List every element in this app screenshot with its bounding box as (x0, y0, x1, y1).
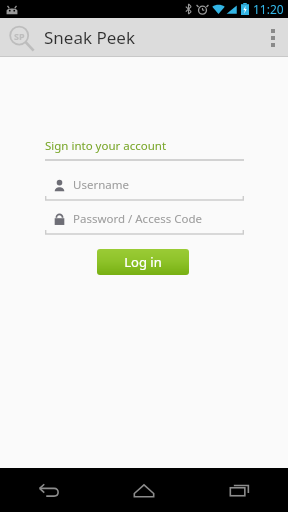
button[interactable]: Home (96, 468, 192, 512)
button[interactable]: More options (258, 18, 288, 57)
button[interactable]: Password / Access Code (45, 211, 244, 235)
staticText: Log in (124, 253, 162, 271)
button[interactable]: Username (45, 177, 244, 201)
button[interactable]: Log in (97, 249, 189, 275)
staticText: SP (14, 30, 25, 42)
button[interactable]: Back (0, 468, 96, 512)
staticText: 11:20 (253, 1, 284, 17)
staticText: Sneak Peek (44, 26, 136, 49)
staticText: Username (73, 177, 129, 193)
staticText: Sign into your account (45, 138, 167, 154)
staticText: Password / Access Code (73, 211, 202, 227)
button[interactable]: Recent apps (192, 468, 288, 512)
